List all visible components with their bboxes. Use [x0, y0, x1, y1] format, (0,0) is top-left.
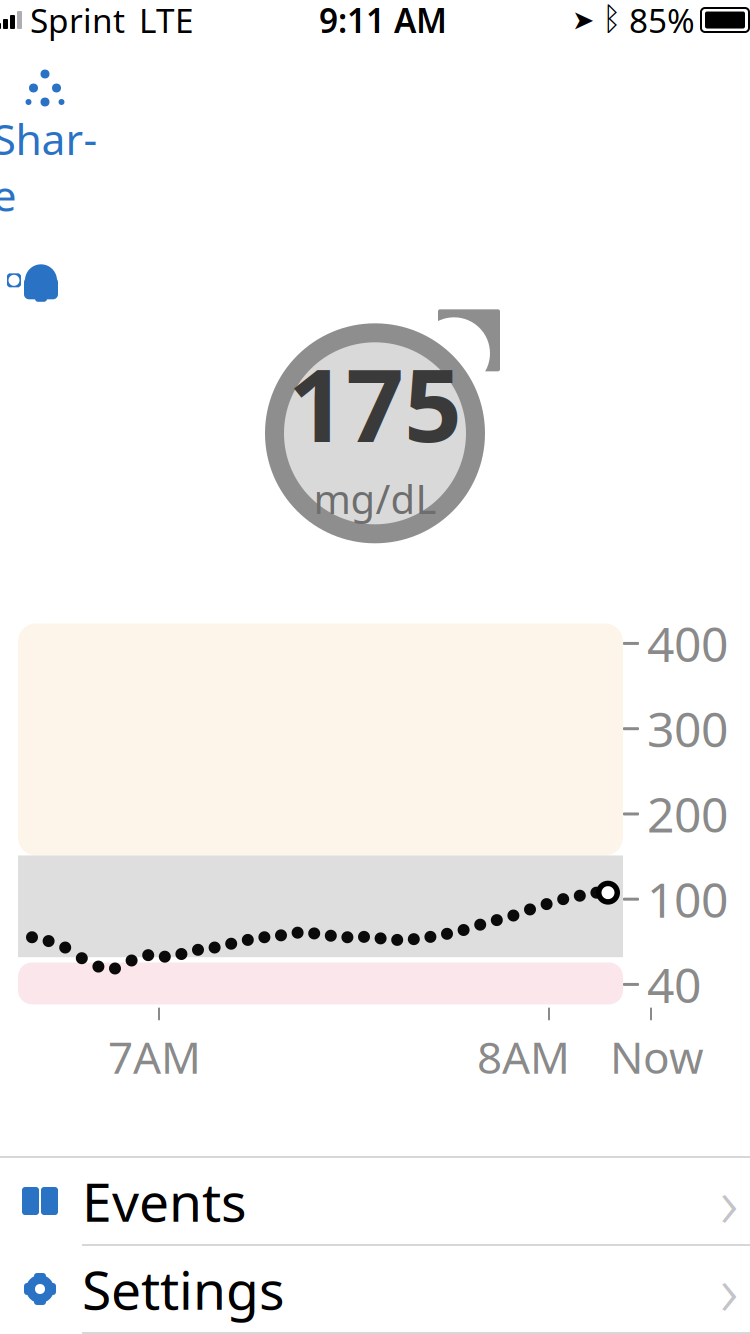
staticText: Share [0, 110, 97, 223]
staticText: ➤ [572, 5, 594, 35]
staticText: Events [82, 1166, 247, 1236]
staticText: 40 [647, 953, 701, 1016]
staticText: Settings [82, 1254, 285, 1324]
staticText: 300 [647, 697, 728, 760]
staticText: ᛒ [602, 4, 621, 36]
button[interactable]: Settings [0, 1246, 750, 1332]
button[interactable]: Alerts [0, 249, 70, 311]
staticText: › [720, 1243, 738, 1334]
staticText: Sprint [30, 0, 125, 42]
button[interactable]: Share [0, 62, 100, 227]
staticText: mg/dL [313, 472, 436, 525]
staticText: › [720, 1155, 738, 1247]
staticText: 7AM [108, 1027, 201, 1086]
staticText: 400 [647, 612, 728, 675]
staticText: 8AM [477, 1027, 570, 1086]
button[interactable]: Events [0, 1158, 750, 1244]
staticText: 100 [647, 867, 728, 931]
staticText: LTE [139, 0, 194, 42]
staticText: 175 [288, 335, 462, 470]
staticText: 9:11 AM [319, 0, 447, 42]
staticText: 200 [647, 782, 728, 846]
staticText: Now [610, 1027, 704, 1086]
staticText: 85% [629, 0, 695, 42]
